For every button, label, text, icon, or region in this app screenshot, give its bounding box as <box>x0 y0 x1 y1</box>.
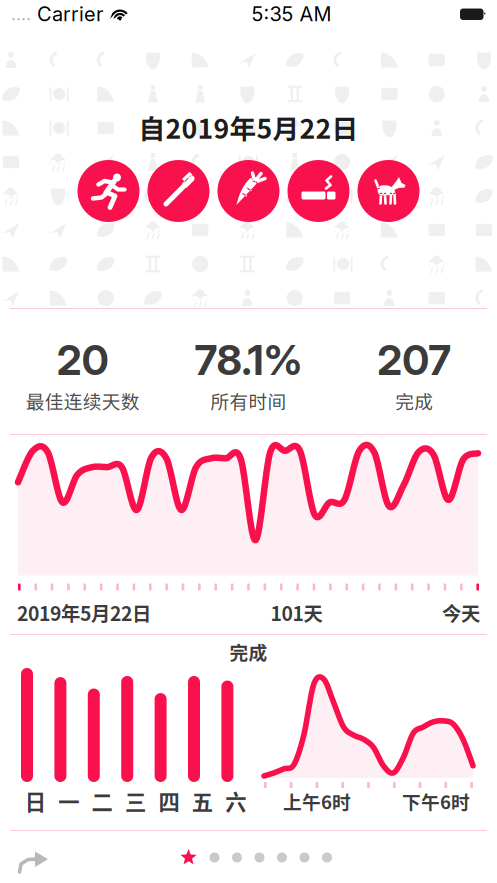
staticText: 二 <box>92 786 113 816</box>
button[interactable]: No smoking <box>287 160 349 222</box>
staticText: 下午6时 <box>402 787 470 814</box>
button[interactable]: Brush teeth <box>147 160 209 222</box>
staticText: 完成 <box>395 387 433 414</box>
button[interactable]: Walk the dog <box>357 160 419 222</box>
staticText: 78.1% <box>194 335 302 385</box>
button[interactable]: Exercise <box>77 160 139 222</box>
staticText: 20 <box>57 335 109 385</box>
button[interactable]: Eat vegetables <box>217 160 279 222</box>
staticText: Carrier <box>31 2 103 26</box>
staticText: 今天 <box>442 598 480 626</box>
staticText: 日 <box>25 786 46 816</box>
staticText: 五 <box>192 786 213 816</box>
button[interactable]: Favourites page <box>180 849 197 866</box>
staticText: 三 <box>125 786 146 816</box>
staticText: 上午6时 <box>283 787 351 814</box>
staticText: 自2019年5月22日 <box>138 108 358 146</box>
staticText: 所有时间 <box>210 387 286 414</box>
staticText: 207 <box>377 335 451 385</box>
button[interactable]: Share <box>6 839 62 883</box>
staticText: 101天 <box>270 598 322 626</box>
staticText: 四 <box>158 786 179 816</box>
staticText: 最佳连续天数 <box>26 387 140 414</box>
staticText: 2019年5月22日 <box>17 598 151 626</box>
staticText: 5:35 AM <box>251 2 331 26</box>
staticText: 一 <box>58 786 79 816</box>
staticText: 六 <box>225 786 246 816</box>
staticText: .... <box>11 3 31 24</box>
staticText: 完成 <box>229 638 267 665</box>
